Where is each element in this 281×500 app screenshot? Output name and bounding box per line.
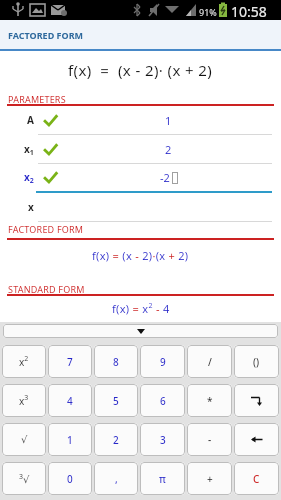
button[interactable]: 3 bbox=[140, 423, 185, 456]
staticText: 9 bbox=[160, 355, 166, 369]
button[interactable]: 8 bbox=[94, 345, 138, 378]
button[interactable]: π bbox=[140, 462, 185, 495]
staticText: 10:58 bbox=[231, 2, 267, 21]
staticText: PARAMETERS bbox=[8, 93, 66, 104]
button[interactable]: - bbox=[187, 423, 232, 456]
button[interactable]: 4 bbox=[48, 384, 92, 417]
staticText: 1 bbox=[67, 433, 73, 447]
staticText: 4 bbox=[67, 394, 73, 408]
button[interactable]: 0 bbox=[48, 462, 92, 495]
button[interactable] bbox=[3, 324, 278, 338]
button[interactable]: FACTORED FORM bbox=[0, 20, 281, 49]
staticText: FACTORED FORM bbox=[8, 223, 84, 234]
button[interactable]: + bbox=[187, 462, 232, 495]
staticText: x bbox=[28, 200, 34, 214]
staticText: + bbox=[207, 472, 213, 486]
staticText: -2 bbox=[160, 170, 170, 185]
staticText: x2 bbox=[19, 354, 29, 369]
staticText: 2 bbox=[113, 433, 119, 447]
button[interactable]: x3 bbox=[2, 384, 46, 417]
button[interactable]: () bbox=[234, 345, 279, 378]
staticText: 1 bbox=[165, 113, 172, 128]
staticText: 6 bbox=[160, 394, 166, 408]
button[interactable]: √ bbox=[2, 423, 46, 456]
staticText: 2 bbox=[165, 142, 172, 157]
staticText: () bbox=[253, 355, 260, 369]
button[interactable]: 3√ bbox=[2, 462, 46, 495]
button[interactable]: 6 bbox=[140, 384, 185, 417]
staticText: - bbox=[208, 433, 212, 447]
button[interactable]: A bbox=[0, 106, 281, 135]
staticText: π bbox=[159, 472, 166, 486]
staticText: 5 bbox=[113, 394, 119, 408]
button[interactable]: 5 bbox=[94, 384, 138, 417]
button[interactable]: x2 bbox=[2, 345, 46, 378]
staticText: , bbox=[115, 472, 118, 486]
staticText: x3 bbox=[19, 393, 29, 408]
staticText: 7 bbox=[67, 355, 73, 369]
button[interactable]: / bbox=[187, 345, 232, 378]
button[interactable]: , bbox=[94, 462, 138, 495]
staticText: f(x) = x2 - 4 bbox=[112, 301, 170, 317]
button[interactable]: x bbox=[0, 193, 281, 222]
staticText: f(x) = (x - 2)· (x + 2) bbox=[68, 60, 213, 80]
button[interactable]: x2 bbox=[0, 164, 281, 193]
staticText: √ bbox=[21, 434, 28, 446]
staticText: 3√ bbox=[19, 472, 30, 485]
button[interactable]: C bbox=[234, 462, 279, 495]
staticText: x2 bbox=[24, 170, 34, 185]
staticText: A bbox=[27, 113, 34, 127]
staticText: 0 bbox=[67, 472, 73, 486]
staticText: C bbox=[253, 472, 260, 486]
staticText: 8 bbox=[113, 355, 119, 369]
button[interactable]: * bbox=[187, 384, 232, 417]
button[interactable]: x1 bbox=[0, 135, 281, 164]
staticText: 3 bbox=[160, 433, 166, 447]
button[interactable] bbox=[234, 423, 279, 456]
staticText: 91% bbox=[199, 6, 217, 18]
button[interactable] bbox=[234, 384, 279, 417]
staticText: f(x) = (x - 2)·(x + 2) bbox=[92, 248, 189, 263]
staticText: / bbox=[208, 355, 212, 369]
button[interactable]: 2 bbox=[94, 423, 138, 456]
staticText: FACTORED FORM bbox=[8, 29, 84, 41]
button[interactable]: 9 bbox=[140, 345, 185, 378]
staticText: * bbox=[207, 394, 213, 408]
button[interactable]: 1 bbox=[48, 423, 92, 456]
staticText: STANDARD FORM bbox=[8, 283, 85, 294]
staticText: x1 bbox=[24, 142, 34, 157]
button[interactable]: 7 bbox=[48, 345, 92, 378]
